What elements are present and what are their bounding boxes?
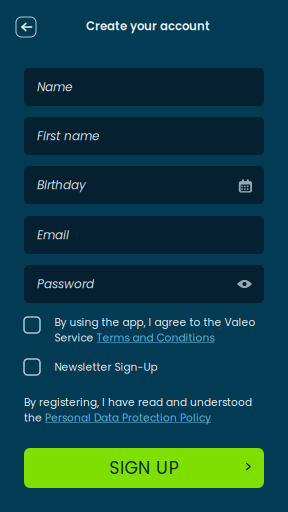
staticText: Create your account — [86, 18, 210, 34]
staticText: Service — [55, 330, 97, 345]
button[interactable]: First name — [24, 117, 264, 155]
button[interactable]: SIGN UP — [24, 448, 264, 488]
button[interactable]: Name — [24, 68, 264, 106]
staticText: Name — [37, 79, 72, 95]
staticText: Email — [37, 227, 69, 243]
staticText: Birthday — [37, 177, 86, 193]
staticText: By using the app, I agree to the Valeo — [55, 315, 256, 330]
staticText: Terms and Conditions — [97, 330, 215, 345]
button[interactable]: By using the app, I agree to the Valeo — [24, 315, 256, 343]
staticText: Newsletter Sign-Up — [55, 360, 158, 374]
button[interactable]: Email — [24, 216, 264, 254]
button[interactable]: Birthday — [24, 166, 264, 204]
staticText: By registering, I have read and understo… — [24, 395, 252, 410]
button[interactable]: Personal Data Protection Policy — [45, 410, 211, 425]
staticText: the — [24, 410, 45, 425]
button[interactable]: Password — [24, 265, 264, 303]
button[interactable]: Back — [16, 17, 36, 37]
staticText: Password — [37, 276, 94, 292]
staticText: SIGN UP — [109, 456, 179, 480]
button[interactable]: Newsletter Sign-Up — [24, 359, 204, 375]
staticText: First name — [37, 128, 99, 144]
staticText: Personal Data Protection Policy — [45, 410, 211, 425]
